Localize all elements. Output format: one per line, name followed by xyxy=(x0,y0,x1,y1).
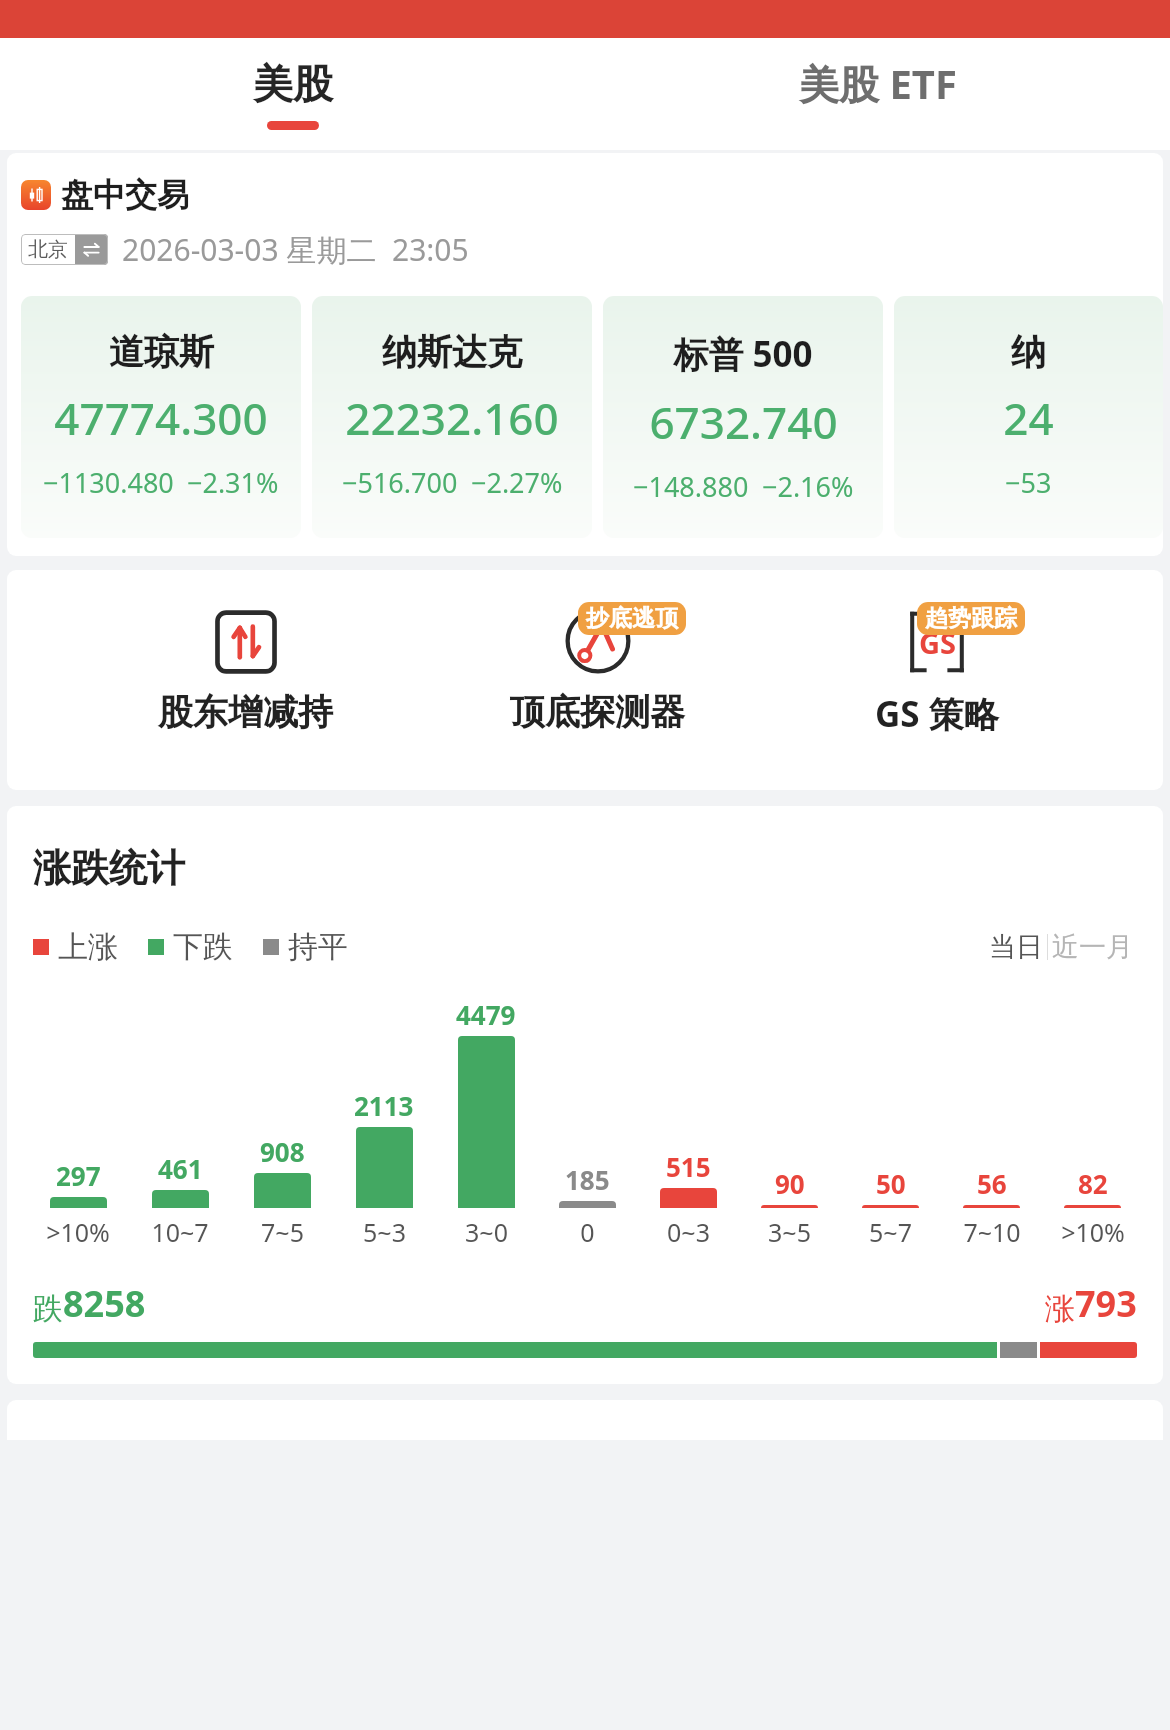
staticText: 7~10 xyxy=(963,1215,1021,1249)
staticText: −2.16% xyxy=(762,468,854,505)
staticText: 22232.160 xyxy=(345,388,559,448)
staticText: 纳斯达克 xyxy=(382,330,522,374)
staticText: 6732.740 xyxy=(649,392,838,452)
staticText: 5~3 xyxy=(363,1215,406,1249)
staticText: −1130.480 xyxy=(43,464,174,501)
staticText: 0 xyxy=(580,1215,595,1249)
staticText: 股东增减持 xyxy=(158,690,333,734)
staticText: 2113 xyxy=(354,1088,414,1123)
button[interactable]: 顶底探测器 xyxy=(484,602,711,734)
staticText: 5~7 xyxy=(869,1215,912,1249)
staticText: 515 xyxy=(666,1149,711,1184)
staticText: 461 xyxy=(158,1151,203,1186)
button[interactable]: 北京 xyxy=(21,234,108,265)
staticText: −148.880 xyxy=(633,468,749,505)
staticText: 上涨 xyxy=(58,928,118,966)
staticText: 47774.300 xyxy=(54,388,268,448)
staticText: 185 xyxy=(565,1162,610,1197)
staticText: 8258 xyxy=(63,1279,146,1328)
staticText: 10~7 xyxy=(151,1215,209,1249)
button[interactable]: GS 策略 xyxy=(836,602,1038,738)
button[interactable]: 当日 xyxy=(985,930,1047,964)
staticText: 道琼斯 xyxy=(109,330,214,374)
other: 股东增减持 xyxy=(215,610,277,674)
staticText: 北京 xyxy=(28,237,68,262)
button[interactable]: 纳斯达克 xyxy=(312,296,592,538)
button[interactable]: 近一月 xyxy=(1048,930,1137,964)
other: GS 策略 xyxy=(906,610,968,674)
button[interactable]: 道琼斯 xyxy=(21,296,301,538)
staticText: 3~5 xyxy=(768,1215,811,1249)
staticText: −2.31% xyxy=(187,464,279,501)
staticText: 跌 xyxy=(33,1290,63,1328)
staticText: GS 策略 xyxy=(875,690,999,738)
staticText: 7~5 xyxy=(261,1215,304,1249)
staticText: 美股 xyxy=(253,59,333,109)
button[interactable]: 美股 ETF xyxy=(585,38,1170,150)
staticText: 56 xyxy=(977,1166,1007,1201)
staticText: 涨跌统计 xyxy=(33,844,185,892)
staticText: 涨 xyxy=(1045,1290,1075,1328)
staticText: 50 xyxy=(876,1166,906,1201)
staticText: 顶底探测器 xyxy=(510,690,685,734)
other: 顶底探测器 xyxy=(565,608,631,674)
staticText: 美股 ETF xyxy=(799,56,957,111)
staticText: 2026-03-03 星期二 23:05 xyxy=(122,229,469,270)
staticText: GS xyxy=(919,623,956,662)
staticText: 908 xyxy=(260,1134,305,1169)
staticText: 盘中交易 xyxy=(61,175,189,215)
button[interactable]: 标普 500 xyxy=(603,296,883,538)
staticText: 标普 500 xyxy=(673,330,813,378)
staticText: >10% xyxy=(1061,1215,1125,1249)
staticText: >10% xyxy=(46,1215,110,1249)
staticText: 793 xyxy=(1075,1279,1137,1328)
staticText: 下跌 xyxy=(173,928,233,966)
staticText: −53 xyxy=(1005,464,1052,501)
button[interactable]: 美股 xyxy=(0,38,585,150)
button[interactable]: 纳 xyxy=(894,296,1163,538)
staticText: −2.27% xyxy=(471,464,563,501)
staticText: 0~3 xyxy=(667,1215,710,1249)
staticText: 297 xyxy=(56,1158,101,1193)
staticText: −516.700 xyxy=(342,464,458,501)
staticText: 90 xyxy=(775,1166,805,1201)
staticText: 24 xyxy=(1003,388,1054,448)
staticText: 82 xyxy=(1078,1166,1108,1201)
staticText: 抄底逃顶 xyxy=(586,604,678,633)
staticText: 3~0 xyxy=(465,1215,508,1249)
staticText: 纳 xyxy=(1011,330,1046,374)
staticText: 近一月 xyxy=(1052,930,1133,964)
staticText: 4479 xyxy=(456,997,516,1032)
staticText: 趋势跟踪 xyxy=(925,604,1017,633)
staticText: 持平 xyxy=(288,928,348,966)
button[interactable]: 股东增减持 xyxy=(132,602,359,734)
staticText: 当日 xyxy=(989,930,1043,964)
